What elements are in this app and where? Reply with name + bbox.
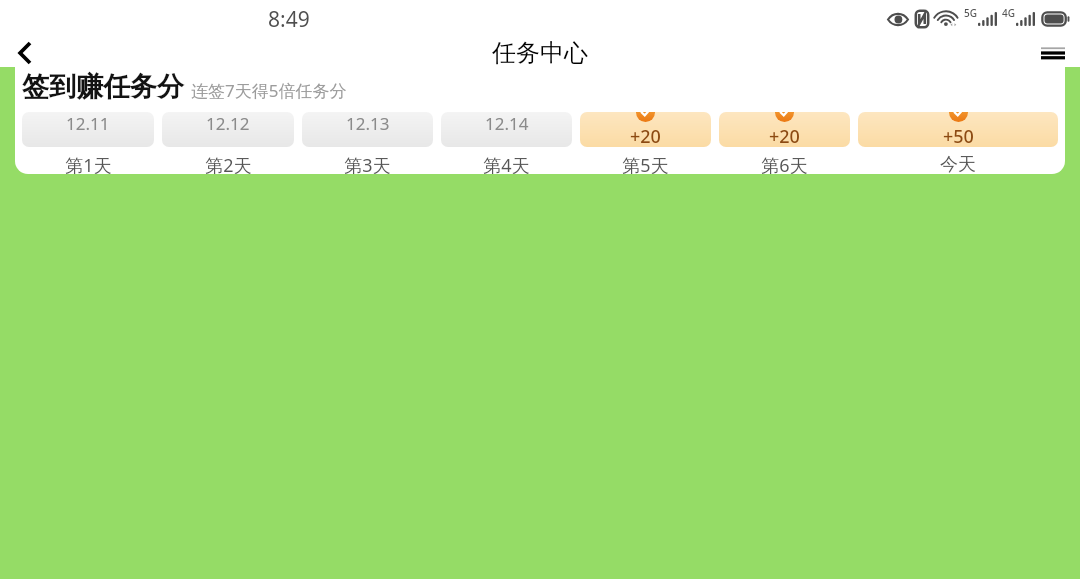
button[interactable]: +50 — [858, 112, 1058, 174]
staticText: 连签7天得5倍任务分 — [191, 79, 347, 102]
staticText: 第2天 — [205, 153, 252, 174]
staticText: 第6天 — [761, 153, 808, 174]
button[interactable]: 12.12 — [162, 112, 294, 174]
staticText: 12.11 — [66, 112, 110, 135]
staticText: 12.13 — [346, 112, 390, 135]
staticText: 4G — [1002, 6, 1015, 20]
staticText: 第1天 — [65, 153, 112, 174]
button[interactable]: +20 — [580, 112, 711, 174]
staticText: 第4天 — [483, 153, 530, 174]
staticText: +20 — [630, 124, 661, 147]
button[interactable]: 12.13 — [302, 112, 433, 174]
staticText: 12.14 — [485, 112, 529, 135]
staticText: 8:49 — [268, 5, 310, 34]
staticText: 第3天 — [344, 153, 391, 174]
staticText: 任务中心 — [492, 38, 588, 67]
button[interactable]: 12.14 — [441, 112, 572, 174]
staticText: 签到赚任务分 — [22, 70, 184, 104]
button[interactable]: Menu — [1032, 38, 1074, 67]
button[interactable]: Back — [4, 38, 44, 67]
staticText: +50 — [943, 124, 974, 147]
staticText: 5G — [964, 6, 977, 20]
staticText: 第5天 — [622, 153, 669, 174]
button[interactable]: +20 — [719, 112, 850, 174]
staticText: 12.12 — [206, 112, 250, 135]
staticText: +20 — [769, 124, 800, 147]
staticText: 今天 — [940, 153, 976, 174]
button[interactable]: 12.11 — [22, 112, 154, 174]
